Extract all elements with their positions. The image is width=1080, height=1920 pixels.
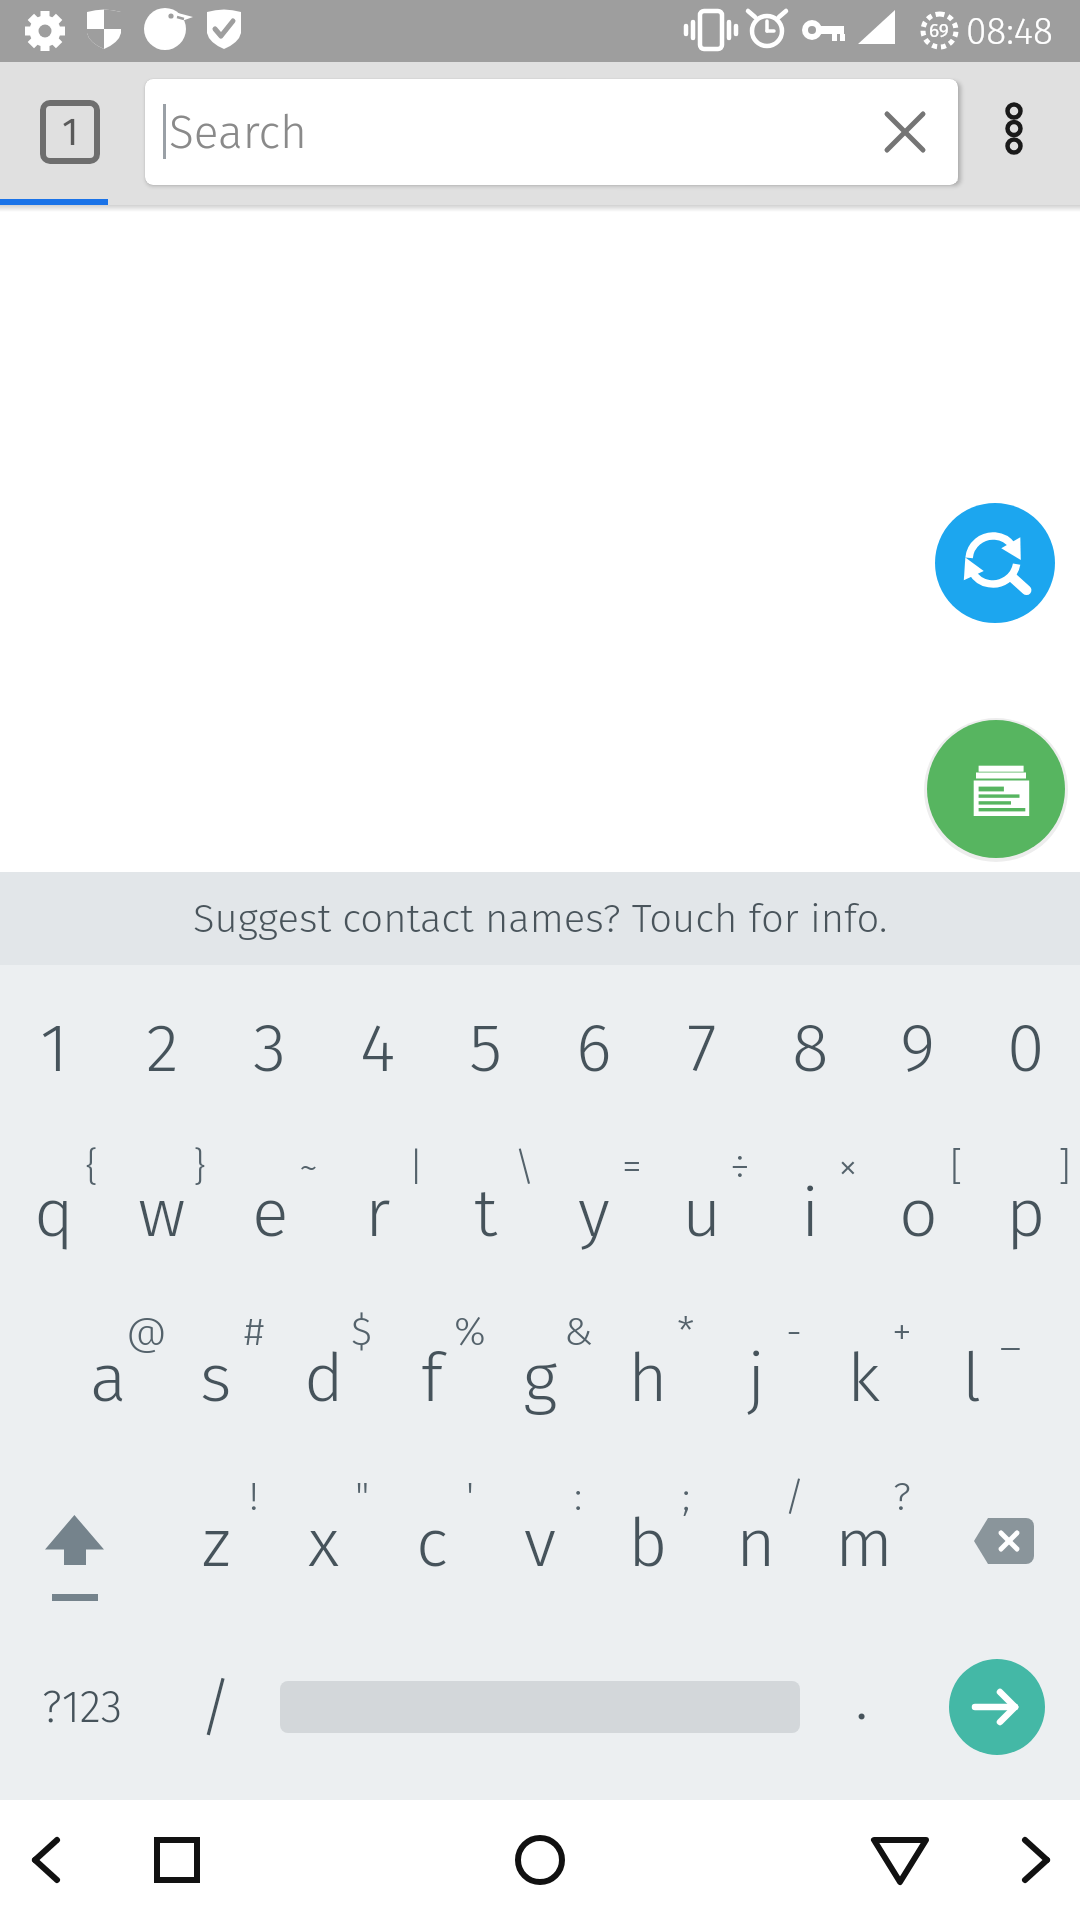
staticText: }: [193, 1143, 207, 1191]
staticText: s: [200, 1337, 232, 1419]
button[interactable]: d: [270, 1295, 378, 1460]
staticText: p: [1006, 1172, 1046, 1254]
button[interactable]: l: [918, 1295, 1026, 1460]
button[interactable]: v: [486, 1460, 594, 1625]
staticText: ;: [682, 1473, 691, 1521]
staticText: Suggest contact names? Touch for info.: [193, 895, 888, 943]
staticText: d: [304, 1337, 344, 1419]
staticText: 0: [1007, 1007, 1045, 1089]
button[interactable]: Search: [145, 79, 958, 185]
button[interactable]: x: [270, 1460, 378, 1625]
staticText: .: [855, 1659, 869, 1736]
button[interactable]: y: [540, 1130, 648, 1295]
staticText: *: [677, 1308, 695, 1356]
staticText: f: [421, 1337, 443, 1419]
staticText: c: [416, 1502, 448, 1584]
button[interactable]: q: [0, 1130, 108, 1295]
button[interactable]: m: [810, 1460, 918, 1625]
button[interactable]: e: [216, 1130, 324, 1295]
staticText: ×: [838, 1143, 858, 1191]
staticText: 4: [360, 1007, 396, 1089]
button[interactable]: f: [378, 1295, 486, 1460]
staticText: \: [514, 1143, 535, 1191]
button[interactable]: s: [162, 1295, 270, 1460]
staticText: /: [784, 1473, 805, 1521]
button[interactable]: 1: [0, 965, 108, 1130]
staticText: i: [801, 1172, 820, 1254]
staticText: g: [523, 1337, 558, 1419]
staticText: z: [202, 1502, 231, 1584]
staticText: 7: [687, 1007, 717, 1089]
staticText: 5: [469, 1007, 503, 1089]
staticText: 8: [792, 1007, 829, 1089]
button[interactable]: z: [162, 1460, 270, 1625]
button[interactable]: j: [702, 1295, 810, 1460]
button[interactable]: 9: [864, 965, 972, 1130]
button[interactable]: Suggest contact names? Touch for info.: [0, 872, 1080, 965]
button[interactable]: 0: [972, 965, 1080, 1130]
staticText: n: [736, 1502, 776, 1584]
staticText: :: [574, 1473, 583, 1521]
staticText: l: [962, 1337, 982, 1419]
staticText: !: [249, 1473, 259, 1521]
staticText: ?123: [42, 1681, 123, 1734]
button[interactable]: h: [594, 1295, 702, 1460]
button[interactable]: k: [810, 1295, 918, 1460]
staticText: [: [950, 1143, 963, 1191]
button[interactable]: [885, 112, 925, 152]
button[interactable]: [949, 1659, 1045, 1755]
staticText: b: [628, 1502, 668, 1584]
staticText: ]: [1058, 1143, 1071, 1191]
staticText: u: [682, 1172, 722, 1254]
button[interactable]: [30, 1500, 120, 1610]
button[interactable]: b: [594, 1460, 702, 1625]
staticText: r: [365, 1172, 391, 1254]
button[interactable]: [1012, 1830, 1062, 1890]
button[interactable]: [927, 720, 1065, 858]
button[interactable]: [150, 1833, 204, 1887]
button[interactable]: p: [972, 1130, 1080, 1295]
button[interactable]: 1: [40, 100, 100, 164]
button[interactable]: 5: [432, 965, 540, 1130]
button[interactable]: 4: [324, 965, 432, 1130]
staticText: Search: [169, 105, 307, 160]
staticText: +: [892, 1308, 912, 1356]
button[interactable]: t: [432, 1130, 540, 1295]
staticText: ?: [893, 1473, 911, 1521]
staticText: h: [628, 1337, 668, 1419]
staticText: {: [85, 1143, 99, 1191]
button[interactable]: o: [864, 1130, 972, 1295]
staticText: 1: [40, 1007, 69, 1089]
button[interactable]: [512, 1832, 568, 1888]
button[interactable]: w: [108, 1130, 216, 1295]
button[interactable]: [935, 503, 1055, 623]
button[interactable]: 2: [108, 965, 216, 1130]
staticText: |: [408, 1143, 425, 1191]
button[interactable]: [20, 1830, 70, 1890]
staticText: 1: [62, 109, 79, 155]
staticText: w: [138, 1172, 186, 1254]
staticText: $: [351, 1308, 373, 1356]
staticText: ": [355, 1473, 370, 1521]
staticText: 3: [253, 1007, 287, 1089]
button[interactable]: g: [486, 1295, 594, 1460]
staticText: y: [578, 1172, 610, 1254]
button[interactable]: c: [378, 1460, 486, 1625]
button[interactable]: [960, 1505, 1050, 1585]
staticText: m: [835, 1502, 894, 1584]
button[interactable]: a: [54, 1295, 162, 1460]
staticText: v: [524, 1502, 556, 1584]
button[interactable]: [984, 99, 1044, 194]
button[interactable]: [870, 1833, 930, 1887]
staticText: ÷: [730, 1143, 750, 1191]
button[interactable]: i: [756, 1130, 864, 1295]
button[interactable]: n: [702, 1460, 810, 1625]
button[interactable]: r: [324, 1130, 432, 1295]
staticText: q: [34, 1172, 74, 1254]
button[interactable]: 6: [540, 965, 648, 1130]
button[interactable]: 8: [756, 965, 864, 1130]
button[interactable]: 3: [216, 965, 324, 1130]
button[interactable]: u: [648, 1130, 756, 1295]
button[interactable]: 7: [648, 965, 756, 1130]
